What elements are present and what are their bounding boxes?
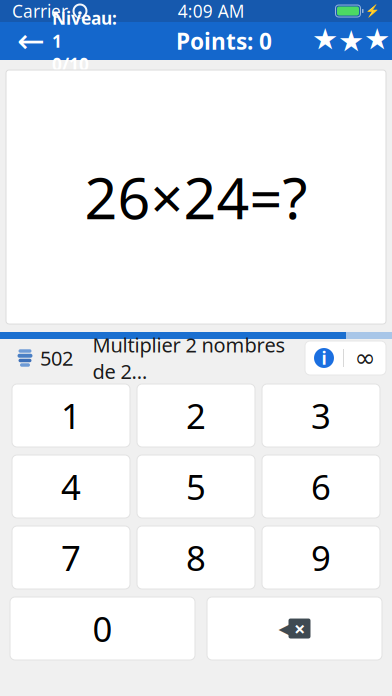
staticText: ⚡ [365, 4, 380, 18]
button[interactable]: 4 [12, 455, 130, 518]
staticText: Multiplier 2 nombres de 2… [92, 331, 285, 384]
staticText: 3 [311, 392, 331, 438]
button[interactable]: Niveau: 1 [52, 6, 128, 76]
staticText: ★ [338, 24, 364, 58]
button[interactable]: 5 [137, 455, 255, 518]
button[interactable]: 3 [262, 384, 380, 447]
button[interactable]: 1 [12, 384, 130, 447]
staticText: Points: 0 [176, 26, 272, 56]
button[interactable]: Back [10, 22, 52, 60]
staticText: 4 [61, 463, 81, 509]
staticText: 7 [61, 534, 81, 580]
staticText: ← [17, 22, 45, 60]
staticText: 4:09 AM [178, 0, 245, 22]
button[interactable]: Stars earned [320, 22, 382, 60]
staticText: × [294, 615, 305, 642]
staticText: ∞ [354, 344, 375, 372]
staticText: ◀ [278, 619, 291, 638]
button[interactable]: 8 [137, 526, 255, 589]
button[interactable]: 9 [262, 526, 380, 589]
button[interactable]: Unlimited [344, 341, 386, 375]
button[interactable]: 0 [10, 597, 195, 660]
button[interactable]: 6 [262, 455, 380, 518]
staticText: Carrier [12, 0, 68, 22]
staticText: 0/10 [52, 52, 89, 75]
staticText: ★ [364, 22, 390, 56]
staticText: 26×24=? [84, 159, 307, 235]
staticText: 9 [311, 534, 331, 580]
button[interactable]: 2 [137, 384, 255, 447]
staticText: 502 [40, 345, 73, 371]
button[interactable]: 7 [12, 526, 130, 589]
staticText: 5 [186, 463, 206, 509]
button[interactable]: Information [305, 341, 343, 375]
staticText: ★ [312, 22, 338, 56]
staticText: 6 [311, 463, 331, 509]
staticText: 0 [92, 605, 112, 651]
staticText: Niveau: 1 [52, 6, 117, 52]
staticText: i [321, 346, 326, 369]
button[interactable]: Delete [207, 597, 382, 660]
staticText: 1 [61, 392, 81, 438]
staticText: 2 [186, 392, 206, 438]
staticText: 8 [186, 534, 206, 580]
